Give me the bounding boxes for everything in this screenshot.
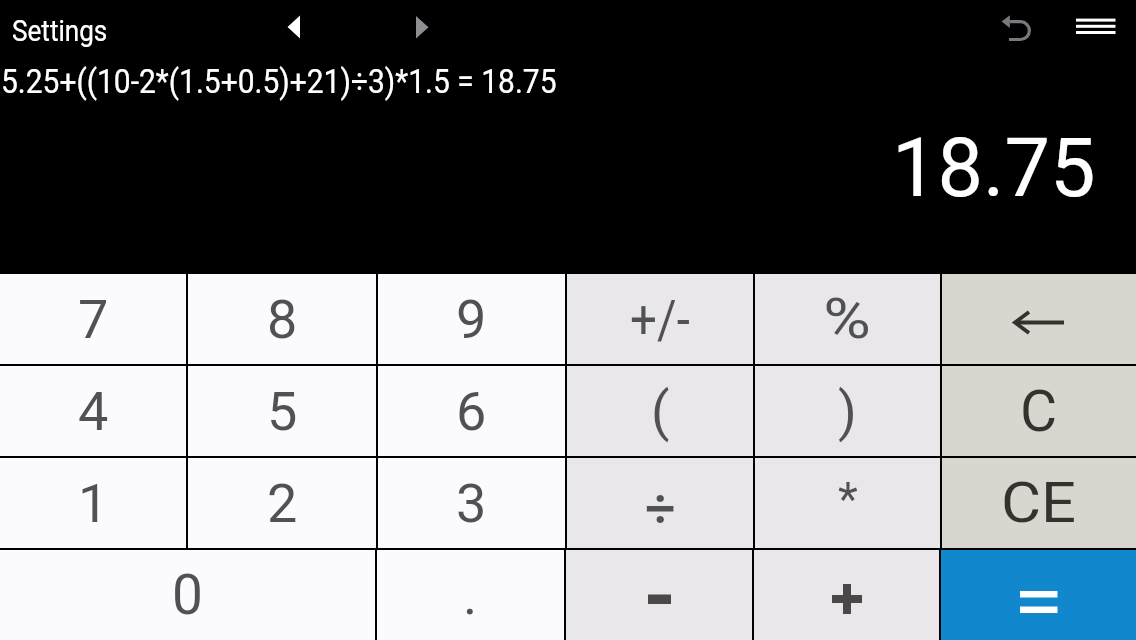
- staticText: 18.75: [892, 121, 1096, 216]
- button[interactable]: [277, 10, 311, 44]
- staticText: 5: [267, 380, 298, 443]
- staticText: .: [463, 564, 478, 627]
- button[interactable]: 4: [0, 366, 186, 456]
- button[interactable]: 5: [188, 366, 376, 456]
- staticText: 2: [267, 472, 298, 535]
- button[interactable]: 6: [378, 366, 565, 456]
- staticText: *: [838, 472, 858, 526]
- button[interactable]: 0: [0, 550, 375, 640]
- button[interactable]: 3: [378, 458, 565, 548]
- button[interactable]: ÷: [567, 458, 753, 548]
- button[interactable]: %: [755, 274, 940, 364]
- button[interactable]: [1076, 14, 1116, 38]
- button[interactable]: 2: [188, 458, 376, 548]
- button[interactable]: .: [377, 550, 564, 640]
- staticText: Settings: [12, 13, 108, 48]
- button[interactable]: [566, 550, 752, 640]
- staticText: 1: [78, 472, 109, 535]
- button[interactable]: [754, 550, 939, 640]
- staticText: ): [838, 380, 857, 443]
- button[interactable]: 1: [0, 458, 186, 548]
- staticText: 9: [456, 288, 487, 351]
- staticText: (: [651, 380, 670, 443]
- button[interactable]: ): [755, 366, 940, 456]
- button[interactable]: [942, 274, 1136, 364]
- button[interactable]: 9: [378, 274, 565, 364]
- button[interactable]: CE: [942, 458, 1136, 548]
- staticText: 5.25+((10-2*(1.5+0.5)+21)÷3)*1.5 = 18.75: [1, 61, 557, 101]
- staticText: %: [823, 287, 872, 351]
- staticText: 0: [172, 563, 203, 627]
- button[interactable]: [996, 6, 1036, 48]
- staticText: C: [1020, 378, 1058, 445]
- staticText: 3: [456, 472, 487, 535]
- staticText: +/-: [630, 288, 690, 351]
- button[interactable]: [406, 10, 440, 44]
- staticText: 4: [78, 380, 109, 443]
- button[interactable]: *: [755, 458, 940, 548]
- button[interactable]: Settings: [12, 13, 122, 48]
- staticText: 8: [267, 288, 298, 351]
- staticText: ÷: [645, 477, 676, 540]
- button[interactable]: [941, 550, 1136, 640]
- staticText: CE: [1001, 471, 1077, 535]
- button[interactable]: (: [567, 366, 753, 456]
- button[interactable]: 8: [188, 274, 376, 364]
- staticText: 7: [78, 288, 109, 351]
- staticText: 6: [456, 380, 487, 443]
- button[interactable]: +/-: [567, 274, 753, 364]
- button[interactable]: C: [942, 366, 1136, 456]
- button[interactable]: 7: [0, 274, 186, 364]
